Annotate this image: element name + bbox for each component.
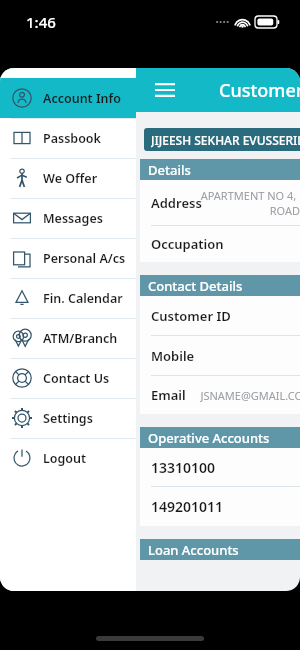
staticText: Account Info <box>43 90 121 107</box>
staticText: Customer ID <box>151 307 231 325</box>
staticText: Customer <box>219 78 300 103</box>
staticText: Email <box>151 386 186 404</box>
staticText: 1:46 <box>26 12 56 32</box>
button[interactable]: 149201011 <box>140 487 300 526</box>
staticText: JSNAME@GMAIL.COM <box>200 388 300 403</box>
staticText: Settings <box>43 410 93 427</box>
button[interactable]: Account Info <box>0 78 136 118</box>
staticText: ATM/Branch <box>43 330 118 347</box>
button[interactable]: Logout <box>0 438 136 478</box>
staticText: Fin. Calendar <box>43 290 123 307</box>
staticText: Operative Accounts <box>148 429 270 447</box>
staticText: Loan Accounts <box>148 541 239 559</box>
staticText: Mobile <box>151 347 195 365</box>
button[interactable]: Occupation <box>140 226 300 262</box>
button[interactable]: We Offer <box>0 158 136 198</box>
staticText: JIJEESH SEKHAR EVUSSERIL <box>151 132 300 148</box>
staticText: Logout <box>43 450 87 467</box>
button[interactable]: Passbook <box>0 118 136 158</box>
button[interactable]: Personal A/cs <box>0 238 136 278</box>
staticText: Details <box>148 161 191 179</box>
button[interactable]: Settings <box>0 398 136 438</box>
button[interactable]: Messages <box>0 198 136 238</box>
staticText: Contact Us <box>43 370 110 387</box>
button[interactable]: 13310100 <box>140 448 300 487</box>
staticText: ROAD <box>269 203 300 218</box>
button[interactable]: Fin. Calendar <box>0 278 136 318</box>
button[interactable]: Customer ID <box>140 296 300 336</box>
staticText: Passbook <box>43 130 101 147</box>
staticText: APARTMENT NO 4, PALM <box>200 188 300 203</box>
staticText: Contact Details <box>148 277 243 295</box>
staticText: 149201011 <box>151 497 224 516</box>
staticText: Messages <box>43 210 103 227</box>
staticText: We Offer <box>43 170 98 187</box>
staticText: Personal A/cs <box>43 250 126 267</box>
staticText: Address <box>151 194 202 212</box>
button[interactable]: Contact Us <box>0 358 136 398</box>
button[interactable]: Address <box>140 180 300 226</box>
button[interactable]: ATM/Branch <box>0 318 136 358</box>
button[interactable]: Email <box>140 376 300 414</box>
staticText: Occupation <box>151 235 224 253</box>
button[interactable]: Mobile <box>140 336 300 376</box>
button[interactable]: Open navigation menu <box>148 73 182 107</box>
staticText: 13310100 <box>151 458 216 477</box>
